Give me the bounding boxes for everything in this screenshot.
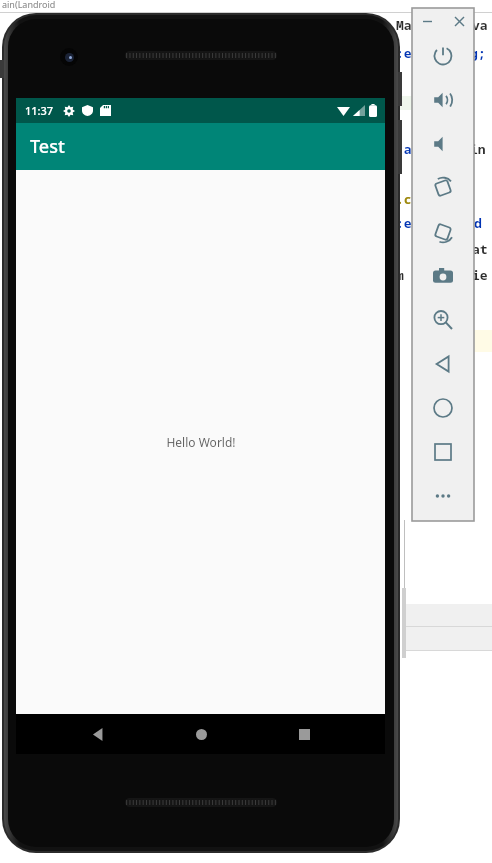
button[interactable]: Home [179, 714, 223, 754]
staticText: Test [30, 134, 65, 159]
button[interactable]: Volume up [412, 78, 474, 122]
staticText: 11:37 [25, 103, 54, 118]
button[interactable]: Test [16, 123, 385, 170]
staticText: Hello World! [166, 434, 236, 450]
button[interactable]: Power [412, 34, 474, 78]
button[interactable]: Screenshot [412, 254, 474, 298]
staticText: at [472, 240, 488, 258]
staticText: m [396, 266, 404, 284]
button[interactable]: Back [412, 342, 474, 386]
button[interactable]: Zoom [412, 298, 474, 342]
button[interactable]: Home [412, 386, 474, 430]
staticText: d [474, 214, 482, 232]
staticText: ie [472, 266, 488, 284]
staticText: ain(Landroid [2, 0, 56, 10]
staticText: .c [396, 190, 412, 208]
button[interactable]: Rotate left [412, 166, 474, 210]
button[interactable]: Recent apps [282, 714, 326, 754]
staticText: in [470, 140, 486, 158]
staticText: :e [396, 214, 412, 232]
staticText: :e [396, 44, 412, 62]
button[interactable]: Volume down [412, 122, 474, 166]
staticText: .a [396, 140, 412, 158]
staticText: va [472, 16, 488, 34]
button[interactable]: Rotate right [412, 210, 474, 254]
button[interactable]: More [412, 474, 474, 518]
button[interactable]: Back [75, 714, 119, 754]
staticText: Ma [396, 16, 412, 34]
button[interactable]: Overview [412, 430, 474, 474]
button[interactable]: Minimize [417, 11, 437, 31]
staticText: g; [470, 44, 486, 62]
button[interactable]: Close [449, 11, 469, 31]
